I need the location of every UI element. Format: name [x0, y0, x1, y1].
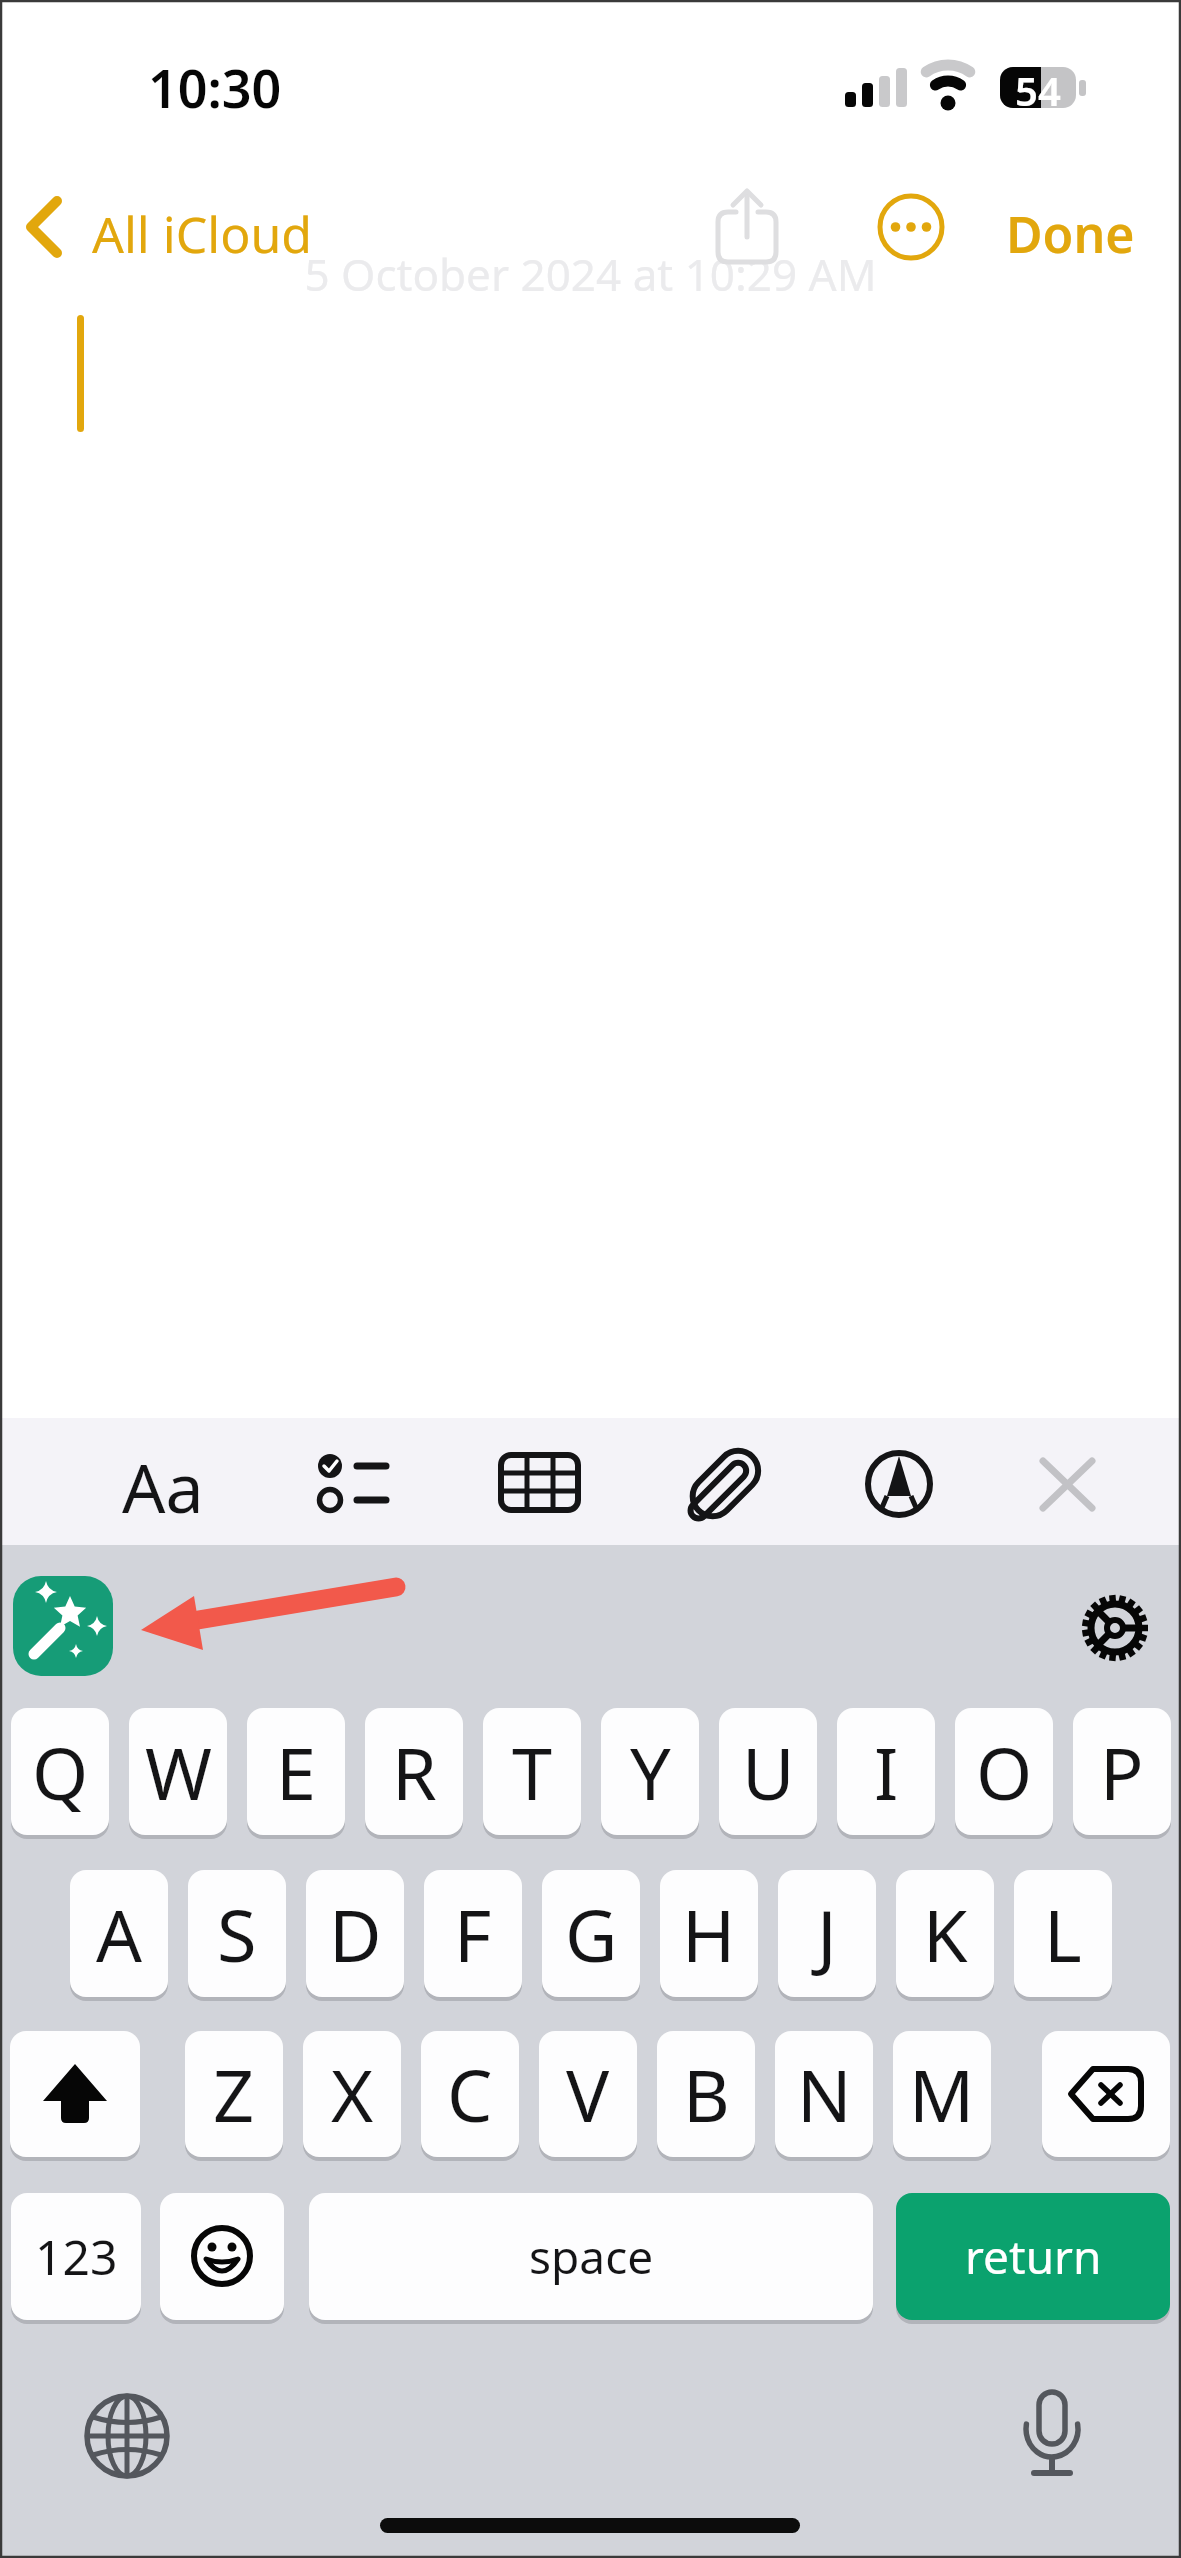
staticText: R: [392, 1723, 437, 1821]
staticText: B: [683, 2045, 730, 2143]
button[interactable]: E: [247, 1708, 345, 1835]
button[interactable]: C: [421, 2031, 519, 2157]
button[interactable]: [80, 2387, 176, 2483]
button[interactable]: [706, 185, 790, 269]
staticText: I: [874, 1723, 899, 1821]
staticText: K: [923, 1885, 968, 1983]
button[interactable]: W: [129, 1708, 227, 1835]
button[interactable]: [300, 1440, 400, 1524]
staticText: N: [797, 2045, 852, 2143]
button[interactable]: U: [719, 1708, 817, 1835]
staticText: W: [145, 1723, 212, 1821]
button[interactable]: N: [775, 2031, 873, 2157]
button[interactable]: [10, 2031, 140, 2157]
button[interactable]: K: [896, 1870, 994, 1997]
button[interactable]: R: [365, 1708, 463, 1835]
button[interactable]: [160, 2193, 284, 2320]
button[interactable]: [1030, 1446, 1106, 1522]
staticText: space: [529, 2225, 654, 2288]
button[interactable]: F: [424, 1870, 522, 1997]
button[interactable]: return: [896, 2193, 1170, 2320]
staticText: 5 October 2024 at 10:29 AM: [0, 244, 1181, 304]
button[interactable]: [680, 1440, 780, 1524]
button[interactable]: P: [1073, 1708, 1171, 1835]
staticText: All iCloud: [92, 200, 313, 268]
button[interactable]: [872, 187, 952, 267]
staticText: return: [965, 2225, 1102, 2288]
staticText: C: [447, 2045, 493, 2143]
staticText: F: [454, 1885, 492, 1983]
button[interactable]: A: [70, 1870, 168, 1997]
staticText: H: [682, 1885, 736, 1983]
button[interactable]: Aa: [122, 1440, 204, 1533]
button[interactable]: V: [539, 2031, 637, 2157]
button[interactable]: [858, 1440, 942, 1524]
button[interactable]: [490, 1440, 590, 1524]
button[interactable]: S: [188, 1870, 286, 1997]
staticText: 123: [35, 2224, 118, 2289]
staticText: V: [566, 2045, 610, 2143]
staticText: Q: [32, 1723, 89, 1821]
button[interactable]: D: [306, 1870, 404, 1997]
button[interactable]: All iCloud: [24, 190, 314, 265]
staticText: J: [817, 1885, 837, 1983]
button[interactable]: [1080, 1592, 1152, 1664]
button[interactable]: Y: [601, 1708, 699, 1835]
button[interactable]: [13, 1576, 113, 1676]
staticText: Done: [1006, 200, 1135, 268]
button[interactable]: 123: [11, 2193, 141, 2320]
staticText: T: [512, 1723, 553, 1821]
button[interactable]: space: [309, 2193, 873, 2320]
button[interactable]: L: [1014, 1870, 1112, 1997]
staticText: P: [1100, 1723, 1144, 1821]
staticText: 10:30: [148, 52, 282, 123]
staticText: G: [565, 1885, 618, 1983]
button[interactable]: Z: [185, 2031, 283, 2157]
staticText: M: [909, 2045, 975, 2143]
staticText: E: [276, 1723, 317, 1821]
button[interactable]: M: [893, 2031, 991, 2157]
button[interactable]: H: [660, 1870, 758, 1997]
staticText: X: [331, 2045, 374, 2143]
staticText: O: [976, 1723, 1033, 1821]
button[interactable]: Done: [996, 190, 1146, 260]
staticText: L: [1044, 1885, 1082, 1983]
staticText: Y: [630, 1723, 671, 1821]
staticText: Z: [213, 2045, 255, 2143]
button[interactable]: O: [955, 1708, 1053, 1835]
staticText: S: [217, 1885, 257, 1983]
button[interactable]: X: [303, 2031, 401, 2157]
staticText: D: [329, 1885, 382, 1983]
button[interactable]: B: [657, 2031, 755, 2157]
button[interactable]: G: [542, 1870, 640, 1997]
button[interactable]: Q: [11, 1708, 109, 1835]
button[interactable]: T: [483, 1708, 581, 1835]
staticText: U: [742, 1723, 795, 1821]
staticText: 54: [1000, 63, 1076, 109]
button[interactable]: [1042, 2031, 1170, 2157]
button[interactable]: J: [778, 1870, 876, 1997]
button[interactable]: [1005, 2385, 1101, 2481]
staticText: A: [96, 1885, 143, 1983]
button[interactable]: I: [837, 1708, 935, 1835]
